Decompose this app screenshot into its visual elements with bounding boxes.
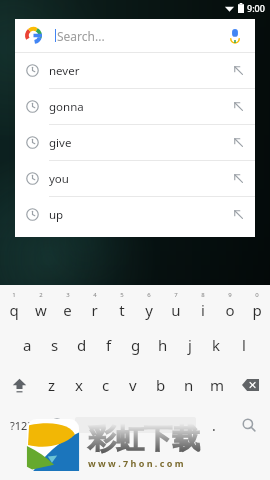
button[interactable]: you <box>15 161 255 196</box>
button[interactable]: v <box>119 365 147 405</box>
button[interactable]: gonna <box>15 89 255 124</box>
staticText: o <box>225 300 235 320</box>
button[interactable]: f <box>95 325 122 365</box>
staticText: 8 <box>201 291 205 299</box>
staticText: give <box>49 135 72 151</box>
button[interactable]: m <box>203 365 231 405</box>
button[interactable]: l <box>230 325 257 365</box>
staticText: ?123 <box>10 418 34 433</box>
button[interactable]: 3 <box>54 285 81 325</box>
staticText: 1 <box>12 291 16 299</box>
button[interactable]: n <box>175 365 203 405</box>
staticText: y <box>145 300 153 320</box>
staticText: 9 <box>228 291 232 299</box>
button[interactable]: Space <box>75 417 196 433</box>
staticText: a <box>23 335 32 355</box>
button[interactable]: 5 <box>108 285 135 325</box>
button[interactable]: never <box>15 53 255 88</box>
staticText: never <box>49 63 80 79</box>
button[interactable]: k <box>203 325 230 365</box>
staticText: f <box>106 335 112 355</box>
button[interactable]: Emoji <box>43 405 71 445</box>
button[interactable]: Insert up <box>221 197 255 232</box>
staticText: c <box>102 375 110 395</box>
button[interactable]: c <box>92 365 119 405</box>
button[interactable]: g <box>122 325 149 365</box>
staticText: t <box>119 300 125 320</box>
button[interactable]: Insert gonna <box>221 89 255 124</box>
staticText: v <box>129 375 137 395</box>
staticText: b <box>156 375 166 395</box>
button[interactable]: s <box>41 325 68 365</box>
button[interactable]: Insert you <box>221 161 255 196</box>
staticText: i <box>201 300 205 320</box>
button[interactable]: Search <box>228 405 270 445</box>
staticText: . <box>212 416 216 435</box>
button[interactable]: 8 <box>189 285 216 325</box>
button[interactable]: Shift <box>0 365 38 405</box>
staticText: w w w . 7 h o n . c o m <box>88 457 184 469</box>
button[interactable]: d <box>68 325 95 365</box>
button[interactable]: Search... <box>15 19 255 52</box>
button[interactable]: x <box>65 365 92 405</box>
staticText: 4 <box>93 291 97 299</box>
button[interactable]: a <box>13 325 41 365</box>
button[interactable]: 2 <box>27 285 54 325</box>
staticText: m <box>210 375 225 395</box>
staticText: up <box>49 207 64 223</box>
button[interactable]: Voice search <box>225 26 245 46</box>
staticText: 3 <box>66 291 70 299</box>
button[interactable]: . <box>200 405 228 445</box>
staticText: h <box>158 335 168 355</box>
staticText: 7 <box>174 291 178 299</box>
staticText: k <box>212 335 221 355</box>
staticText: 6 <box>147 291 151 299</box>
button[interactable]: h <box>149 325 176 365</box>
staticText: w <box>35 300 47 320</box>
staticText: 9:00 <box>247 2 265 14</box>
button[interactable]: give <box>15 125 255 160</box>
button[interactable]: 7 <box>162 285 189 325</box>
staticText: 彩虹下载 <box>88 421 200 456</box>
button[interactable]: up <box>15 197 255 232</box>
button[interactable]: 9 <box>216 285 243 325</box>
staticText: u <box>171 300 181 320</box>
staticText: s <box>51 335 59 355</box>
staticText: 2 <box>39 291 43 299</box>
staticText: j <box>188 335 192 355</box>
staticText: q <box>9 300 19 320</box>
button[interactable]: 6 <box>135 285 162 325</box>
button[interactable]: Backspace <box>231 365 270 405</box>
staticText: 5 <box>120 291 124 299</box>
button[interactable]: Insert never <box>221 53 255 88</box>
staticText: p <box>252 300 262 320</box>
staticText: you <box>49 171 69 187</box>
staticText: z <box>48 375 56 395</box>
button[interactable]: Insert give <box>221 125 255 160</box>
button[interactable]: ?123 <box>0 405 43 445</box>
staticText: g <box>131 335 141 355</box>
staticText: gonna <box>49 99 84 115</box>
button[interactable]: b <box>147 365 175 405</box>
staticText: r <box>91 300 98 320</box>
button[interactable]: 0 <box>243 285 270 325</box>
button[interactable]: 1 <box>0 285 27 325</box>
staticText: 0 <box>255 291 259 299</box>
staticText: x <box>75 375 83 395</box>
staticText: n <box>184 375 194 395</box>
button[interactable]: z <box>38 365 65 405</box>
button[interactable]: j <box>176 325 203 365</box>
staticText: d <box>77 335 87 355</box>
staticText: e <box>63 300 72 320</box>
staticText: l <box>242 335 246 355</box>
staticText: Search... <box>57 28 105 44</box>
button[interactable]: 4 <box>81 285 108 325</box>
